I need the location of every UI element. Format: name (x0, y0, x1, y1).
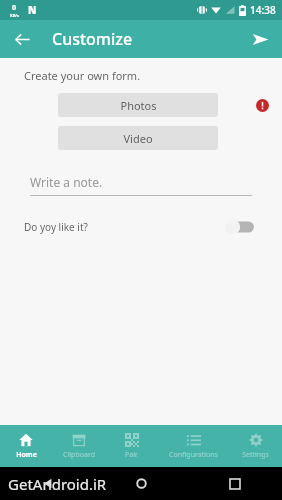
button[interactable]: Home (94, 467, 188, 500)
staticText: 0 (12, 3, 17, 13)
button[interactable]: Back (6, 23, 38, 55)
staticText: Configurations (169, 450, 218, 460)
button[interactable]: Home (0, 425, 52, 467)
staticText: N (28, 3, 37, 17)
button[interactable]: Toggle (224, 218, 258, 236)
staticText: Photos (120, 98, 157, 113)
staticText: Write a note. (30, 174, 103, 190)
button[interactable]: Configurations (158, 425, 229, 467)
staticText: Home (16, 450, 37, 460)
staticText: KB/s (10, 13, 19, 18)
button[interactable]: Clipboard (52, 425, 105, 467)
staticText: Pair (125, 450, 138, 460)
staticText: Do yoy like it? (24, 220, 88, 234)
staticText: Customize (52, 28, 133, 50)
staticText: Video (123, 131, 153, 146)
button[interactable]: Recents (188, 467, 282, 500)
staticText: 14:38 (250, 3, 276, 17)
staticText: Settings (242, 450, 269, 460)
staticText: GetAndroid.iR (8, 474, 107, 494)
staticText: Create your own form. (24, 68, 141, 83)
button[interactable]: Send (244, 23, 276, 55)
button[interactable]: Write a note. (30, 174, 252, 196)
button[interactable]: Pair (105, 425, 158, 467)
button[interactable]: Photos (58, 93, 218, 117)
staticText: Clipboard (63, 450, 95, 460)
button[interactable]: Settings (229, 425, 282, 467)
button[interactable]: Video (58, 126, 218, 150)
button[interactable]: Back (0, 467, 94, 500)
